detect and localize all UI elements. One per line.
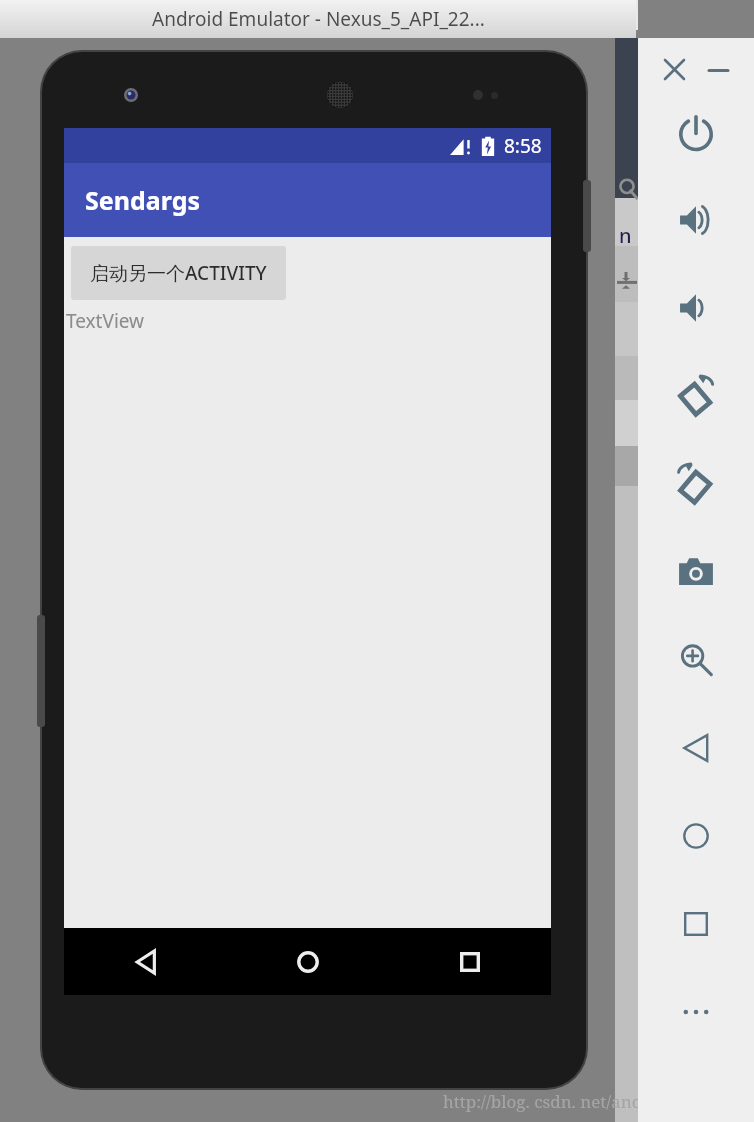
button[interactable]: Power — [670, 106, 722, 158]
button[interactable]: Take screenshot — [670, 546, 722, 598]
staticText: Sendargs — [85, 183, 201, 217]
button[interactable]: Volume down — [670, 282, 722, 334]
staticText: TextView — [66, 308, 145, 334]
button[interactable]: Zoom — [670, 634, 722, 686]
button[interactable]: Home — [227, 928, 389, 995]
button[interactable]: Back — [670, 722, 722, 774]
staticText: http://blog. csdn. net/another_a — [443, 1090, 693, 1113]
button[interactable]: More — [670, 986, 722, 1038]
button[interactable]: Volume up — [670, 194, 722, 246]
button[interactable]: 启动另一个ACTIVITY — [71, 246, 286, 300]
button[interactable]: Home — [670, 810, 722, 862]
staticText: n — [619, 222, 632, 249]
button[interactable]: Back — [64, 928, 227, 995]
staticText: Android Emulator - Nexus_5_API_22... — [152, 6, 485, 32]
button[interactable]: Overview — [670, 898, 722, 950]
button[interactable]: Minimize — [703, 54, 733, 84]
staticText: 8:58 — [504, 133, 542, 159]
button[interactable]: Rotate right — [670, 458, 722, 510]
button[interactable]: Close — [659, 54, 689, 84]
staticText: 启动另一个ACTIVITY — [90, 260, 267, 286]
button[interactable]: Rotate left — [670, 370, 722, 422]
button[interactable]: Recent apps — [389, 928, 551, 995]
